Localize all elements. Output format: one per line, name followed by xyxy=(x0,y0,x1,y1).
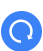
button[interactable]: Refresh xyxy=(0,0,43,51)
